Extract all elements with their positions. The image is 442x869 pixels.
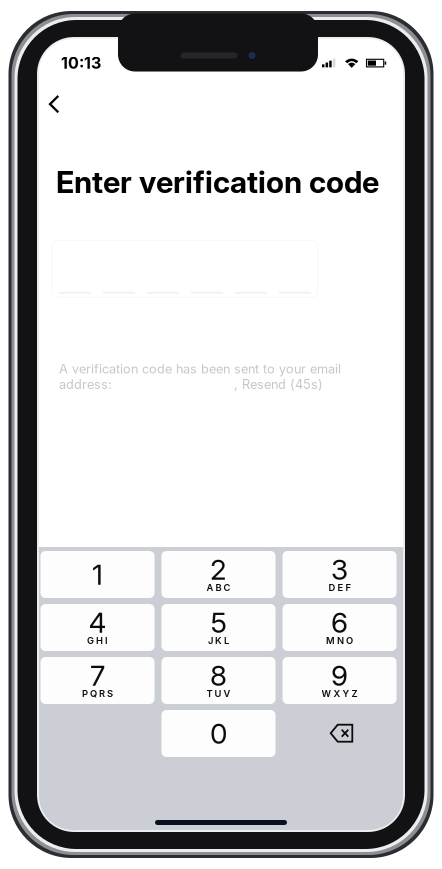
staticText: 3 xyxy=(331,553,348,586)
staticText: 1 xyxy=(92,558,103,591)
staticText: M N O xyxy=(326,635,353,646)
staticText: 5 xyxy=(210,606,226,639)
button[interactable]: 0 xyxy=(161,710,275,757)
staticText: J K L xyxy=(208,635,229,646)
staticText: 2 xyxy=(210,553,227,586)
staticText: 6 xyxy=(331,606,348,639)
staticText: 10:13 xyxy=(61,53,101,73)
button[interactable]: 5 xyxy=(161,604,275,651)
button[interactable]: 3 xyxy=(282,551,396,598)
staticText: A B C xyxy=(206,582,230,593)
staticText: 4 xyxy=(88,606,106,639)
staticText: address: xyxy=(59,377,112,392)
button[interactable]: 1 xyxy=(40,551,154,598)
button[interactable]: Delete xyxy=(282,710,396,757)
staticText: P Q R S xyxy=(82,688,113,699)
staticText: T U V xyxy=(206,688,230,699)
button[interactable]: 2 xyxy=(161,551,275,598)
staticText: Enter verification code xyxy=(56,164,379,200)
staticText: 9 xyxy=(331,659,348,692)
staticText: G H I xyxy=(87,635,108,646)
button[interactable]: , Resend (45s) xyxy=(234,377,323,392)
staticText: 8 xyxy=(210,659,227,692)
button[interactable]: 7 xyxy=(40,657,154,704)
button[interactable]: 9 xyxy=(282,657,396,704)
staticText: W X Y Z xyxy=(321,688,357,699)
staticText: D E F xyxy=(328,582,350,593)
button[interactable]: Back xyxy=(35,85,73,123)
staticText: , Resend (45s) xyxy=(234,377,323,392)
staticText: 0 xyxy=(210,717,227,750)
button[interactable]: 4 xyxy=(40,604,154,651)
button[interactable]: 8 xyxy=(161,657,275,704)
staticText: 7 xyxy=(90,659,105,692)
staticText: A verification code has been sent to you… xyxy=(59,361,341,377)
button[interactable]: 6 xyxy=(282,604,396,651)
